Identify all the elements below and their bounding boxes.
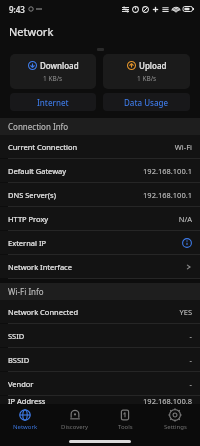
- button[interactable]: Settings: [150, 404, 200, 436]
- staticText: Data Usage: [124, 97, 169, 108]
- staticText: Settings: [164, 423, 187, 431]
- staticText: IP Address: [8, 396, 143, 404]
- staticText: Connection Info: [8, 121, 69, 132]
- staticText: -: [189, 331, 192, 341]
- button[interactable]: Upload: [103, 54, 190, 89]
- staticText: Tools: [118, 423, 133, 431]
- staticText: Current Connection: [8, 142, 174, 152]
- staticText: Vendor: [8, 379, 189, 389]
- staticText: HTTP Proxy: [8, 214, 178, 224]
- staticText: 1 KB/s: [137, 74, 157, 83]
- staticText: Internet: [37, 97, 69, 108]
- staticText: DNS Server(s): [8, 190, 143, 200]
- staticText: Network Interface: [8, 262, 184, 272]
- button[interactable]: Discovery: [50, 404, 100, 436]
- staticText: Wi-Fi: [174, 142, 192, 152]
- staticText: YES: [179, 307, 192, 317]
- button[interactable]: Data Usage: [103, 93, 190, 111]
- staticText: Default Gateway: [8, 166, 143, 176]
- staticText: 192.168.100.8: [143, 396, 192, 404]
- button[interactable]: Vendor: [0, 372, 200, 395]
- staticText: 192.168.100.1: [143, 190, 192, 200]
- staticText: Network: [13, 423, 38, 431]
- staticText: Network: [9, 24, 54, 39]
- staticText: Discovery: [61, 423, 89, 431]
- staticText: External IP: [8, 238, 182, 248]
- button[interactable]: Network: [0, 404, 50, 436]
- staticText: SSID: [8, 331, 189, 341]
- staticText: -: [189, 355, 192, 365]
- staticText: Upload: [139, 60, 167, 71]
- button[interactable]: Current Connection: [0, 135, 200, 158]
- button[interactable]: SSID: [0, 324, 200, 347]
- button[interactable]: Internet: [10, 93, 96, 111]
- staticText: Network Connected: [8, 307, 179, 317]
- button[interactable]: Network Connected: [0, 300, 200, 323]
- button[interactable]: Network Interface: [0, 255, 200, 278]
- button[interactable]: DNS Server(s): [0, 183, 200, 206]
- staticText: 192.168.100.1: [143, 166, 192, 176]
- staticText: BSSID: [8, 355, 189, 365]
- button[interactable]: HTTP Proxy: [0, 207, 200, 230]
- button[interactable]: Tools: [100, 404, 150, 436]
- staticText: Download: [40, 60, 79, 71]
- staticText: 9:43: [9, 4, 25, 15]
- button[interactable]: Download: [10, 54, 96, 89]
- staticText: Wi-Fi Info: [8, 286, 44, 297]
- staticText: 1 KB/s: [43, 74, 63, 83]
- staticText: N/A: [178, 214, 192, 224]
- button[interactable]: Default Gateway: [0, 159, 200, 182]
- other: External IP info: [182, 238, 192, 248]
- button[interactable]: BSSID: [0, 348, 200, 371]
- button[interactable]: IP Address: [0, 396, 200, 404]
- button[interactable]: External IP: [0, 231, 200, 254]
- staticText: -: [189, 379, 192, 389]
